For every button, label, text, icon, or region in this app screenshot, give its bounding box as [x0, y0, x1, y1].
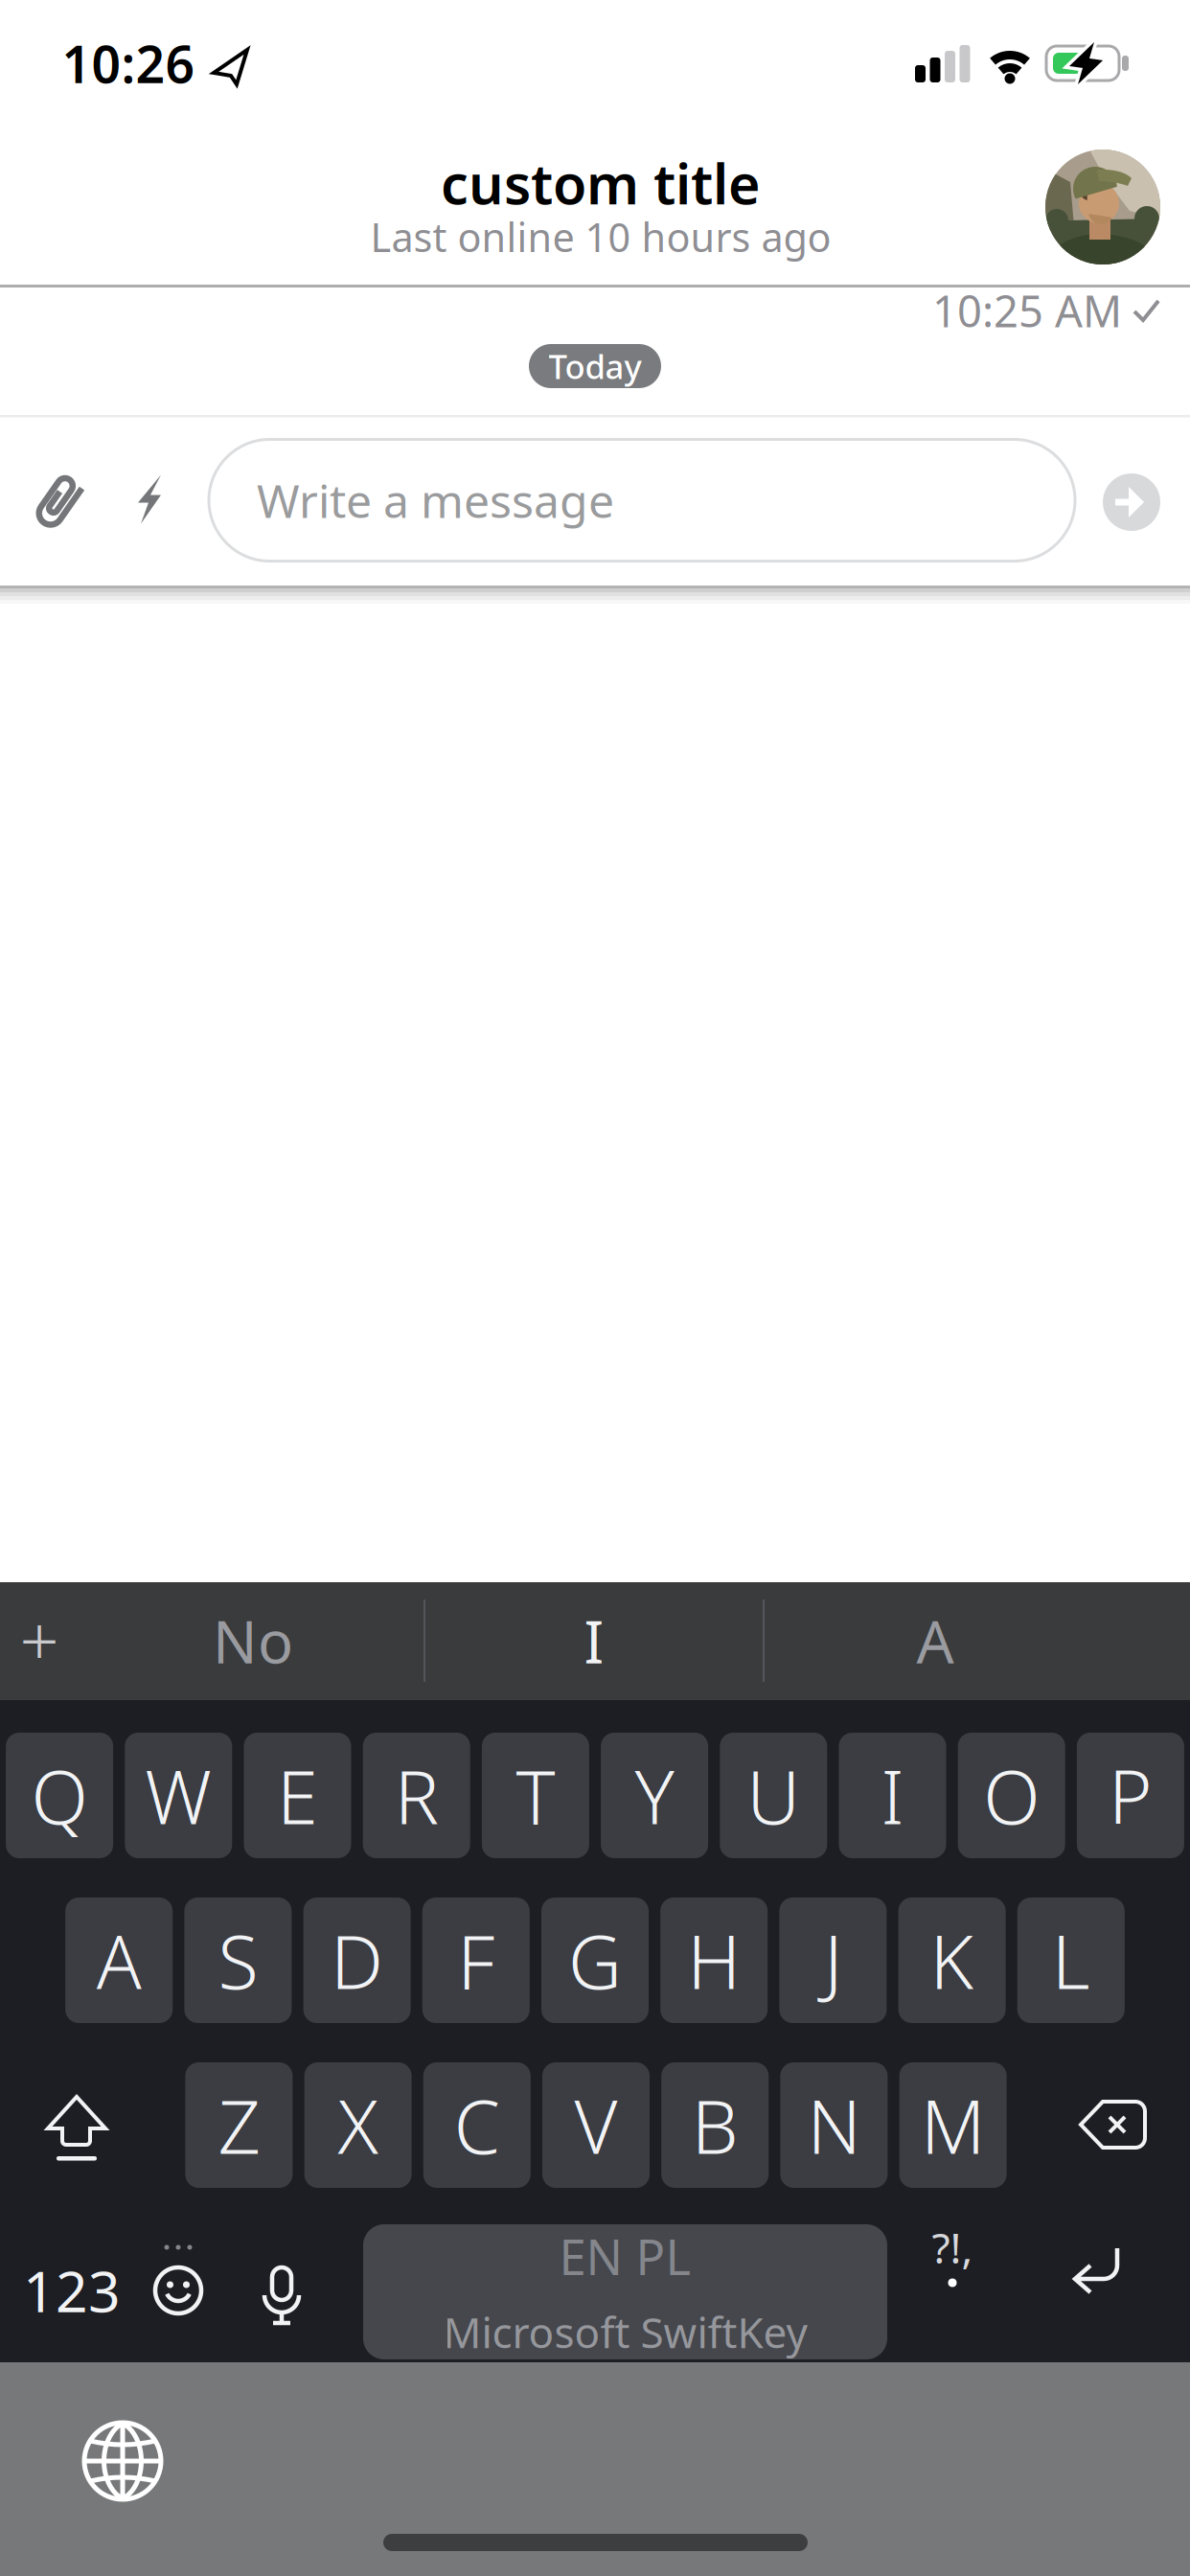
staticText: D	[331, 1911, 383, 2010]
staticText: Q	[31, 1746, 88, 1845]
button[interactable]: Write a message	[209, 439, 1075, 561]
button[interactable]: Profile	[1045, 149, 1160, 264]
button[interactable]: I	[431, 1585, 757, 1696]
staticText: ?!,	[932, 2219, 973, 2275]
staticText: A	[916, 1602, 954, 1680]
staticText: I	[881, 1746, 904, 1845]
button[interactable]: F	[422, 1897, 530, 2023]
button[interactable]: Attach file	[26, 475, 93, 542]
button[interactable]: 123	[14, 2228, 129, 2353]
button[interactable]: C	[423, 2062, 531, 2188]
staticText: V	[574, 2076, 618, 2174]
staticText: O	[983, 1746, 1040, 1845]
button[interactable]: J	[779, 1897, 887, 2023]
button[interactable]: V	[542, 2062, 650, 2188]
button[interactable]: Quick actions	[138, 475, 161, 524]
button[interactable]: A	[772, 1585, 1098, 1696]
staticText: E	[277, 1746, 318, 1845]
button[interactable]: Shift	[24, 2062, 129, 2188]
staticText: P	[1108, 1746, 1153, 1845]
staticText: H	[687, 1911, 741, 2010]
staticText: R	[394, 1746, 439, 1845]
staticText: 123	[23, 2253, 121, 2328]
button[interactable]: Punctuation	[909, 2224, 995, 2330]
button[interactable]: P	[1077, 1733, 1184, 1858]
button[interactable]: Delete	[1060, 2062, 1165, 2188]
button[interactable]: Send	[1103, 473, 1160, 531]
staticText: Microsoft SwiftKey	[443, 2304, 807, 2360]
staticText: Y	[635, 1746, 674, 1845]
staticText: Today	[549, 344, 641, 388]
button[interactable]: Today	[529, 344, 661, 388]
button[interactable]: H	[660, 1897, 768, 2023]
staticText: 10:26	[62, 29, 195, 97]
button[interactable]: U	[720, 1733, 827, 1858]
staticText: J	[824, 1911, 842, 2010]
button[interactable]: Emoji	[145, 2235, 212, 2321]
staticText: T	[516, 1746, 555, 1845]
button[interactable]: X	[304, 2062, 412, 2188]
button[interactable]: Z	[185, 2062, 293, 2188]
staticText: G	[568, 1911, 622, 2010]
staticText: A	[96, 1911, 142, 2010]
button[interactable]: N	[780, 2062, 888, 2188]
staticText: +	[20, 1593, 59, 1685]
button[interactable]: O	[958, 1733, 1065, 1858]
staticText: EN PL	[559, 2224, 691, 2288]
staticText: Write a message	[257, 470, 614, 531]
staticText: K	[930, 1911, 974, 2010]
staticText: U	[747, 1746, 800, 1845]
button[interactable]: S	[184, 1897, 292, 2023]
button[interactable]: No	[90, 1585, 416, 1696]
staticText: N	[807, 2076, 861, 2174]
staticText: F	[457, 1911, 495, 2010]
button[interactable]: Space	[363, 2224, 887, 2359]
button[interactable]: Switch keyboard	[75, 2413, 171, 2509]
staticText: X	[338, 2076, 378, 2174]
button[interactable]: E	[244, 1733, 351, 1858]
staticText: C	[454, 2076, 500, 2174]
staticText: W	[145, 1746, 212, 1845]
button[interactable]: Expand toolbar	[20, 1593, 59, 1685]
staticText: M	[921, 2076, 985, 2174]
button[interactable]: W	[125, 1733, 232, 1858]
staticText: 10:25 AM	[932, 282, 1122, 339]
staticText: I	[584, 1602, 604, 1680]
staticText: L	[1052, 1911, 1090, 2010]
button[interactable]: G	[541, 1897, 649, 2023]
button[interactable]: D	[303, 1897, 411, 2023]
button[interactable]: T	[482, 1733, 589, 1858]
button[interactable]: B	[661, 2062, 769, 2188]
staticText: S	[218, 1911, 258, 2010]
button[interactable]: R	[363, 1733, 470, 1858]
button[interactable]: Voice input	[248, 2242, 315, 2337]
button[interactable]: Y	[601, 1733, 708, 1858]
button[interactable]: A	[65, 1897, 173, 2023]
button[interactable]: Q	[6, 1733, 113, 1858]
staticText: custom title	[441, 147, 761, 219]
button[interactable]: L	[1017, 1897, 1125, 2023]
button[interactable]: Return	[1067, 2242, 1134, 2310]
button[interactable]: K	[898, 1897, 1006, 2023]
button[interactable]: M	[899, 2062, 1007, 2188]
staticText: Z	[218, 2076, 260, 2174]
staticText: Last online 10 hours ago	[370, 210, 831, 263]
staticText: B	[691, 2076, 738, 2174]
staticText: No	[213, 1602, 293, 1680]
button[interactable]: I	[839, 1733, 946, 1858]
